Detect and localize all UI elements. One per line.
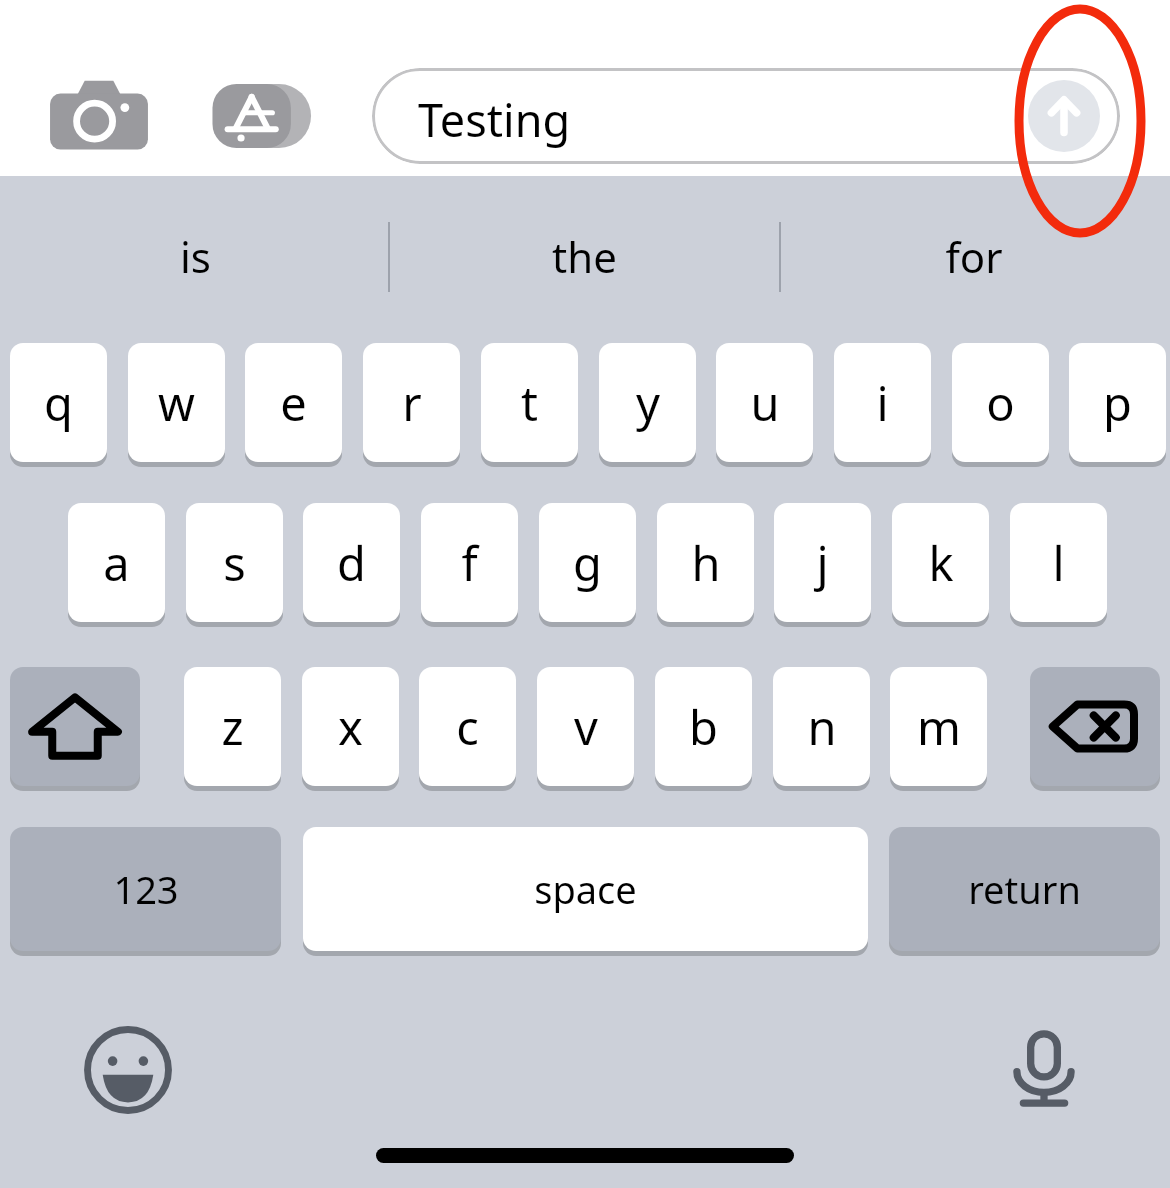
- staticText: f: [461, 531, 478, 595]
- staticText: s: [223, 531, 246, 595]
- button[interactable]: w: [128, 343, 225, 462]
- staticText: v: [574, 695, 598, 759]
- staticText: is: [180, 228, 211, 285]
- staticText: c: [456, 695, 479, 759]
- button[interactable]: is: [65, 200, 325, 312]
- staticText: t: [521, 371, 538, 435]
- staticText: a: [103, 531, 130, 595]
- button[interactable]: x: [302, 667, 399, 786]
- button[interactable]: r: [363, 343, 460, 462]
- button[interactable]: h: [657, 503, 754, 622]
- staticText: h: [691, 531, 721, 595]
- button[interactable]: for: [844, 200, 1104, 312]
- staticText: e: [280, 371, 307, 435]
- button[interactable]: Send: [1028, 80, 1100, 152]
- button[interactable]: return: [889, 827, 1160, 951]
- button[interactable]: d: [303, 503, 400, 622]
- staticText: u: [750, 371, 780, 435]
- button[interactable]: App Store: [208, 76, 320, 156]
- button[interactable]: n: [773, 667, 870, 786]
- staticText: i: [876, 371, 889, 435]
- button[interactable]: t: [481, 343, 578, 462]
- staticText: q: [44, 371, 73, 435]
- button[interactable]: i: [834, 343, 931, 462]
- staticText: w: [158, 371, 195, 435]
- staticText: o: [986, 371, 1015, 435]
- button[interactable]: f: [421, 503, 518, 622]
- staticText: r: [402, 371, 422, 435]
- button[interactable]: Testing: [372, 68, 1120, 164]
- button[interactable]: o: [952, 343, 1049, 462]
- button[interactable]: 123: [10, 827, 281, 951]
- button[interactable]: l: [1010, 503, 1107, 622]
- staticText: for: [945, 228, 1003, 285]
- button[interactable]: y: [599, 343, 696, 462]
- staticText: return: [968, 863, 1081, 915]
- button[interactable]: z: [184, 667, 281, 786]
- staticText: p: [1103, 371, 1132, 435]
- button[interactable]: p: [1069, 343, 1166, 462]
- staticText: m: [917, 695, 961, 759]
- button[interactable]: Shift: [10, 667, 140, 786]
- button[interactable]: m: [890, 667, 987, 786]
- staticText: the: [552, 228, 617, 285]
- button[interactable]: g: [539, 503, 636, 622]
- staticText: 123: [113, 863, 179, 915]
- staticText: x: [338, 695, 363, 759]
- staticText: n: [807, 695, 837, 759]
- button[interactable]: Delete: [1030, 667, 1160, 786]
- staticText: j: [816, 531, 829, 595]
- button[interactable]: a: [68, 503, 165, 622]
- button[interactable]: v: [537, 667, 634, 786]
- button[interactable]: q: [10, 343, 107, 462]
- staticText: k: [928, 531, 954, 595]
- staticText: l: [1052, 531, 1065, 595]
- button[interactable]: space: [303, 827, 868, 951]
- staticText: d: [337, 531, 366, 595]
- button[interactable]: u: [716, 343, 813, 462]
- button[interactable]: the: [454, 200, 714, 312]
- button[interactable]: k: [892, 503, 989, 622]
- button[interactable]: j: [774, 503, 871, 622]
- button[interactable]: s: [186, 503, 283, 622]
- button[interactable]: e: [245, 343, 342, 462]
- staticText: z: [221, 695, 244, 759]
- button[interactable]: Emoji keyboard: [76, 1018, 180, 1122]
- staticText: y: [636, 371, 660, 435]
- button[interactable]: Dictation: [992, 1018, 1096, 1122]
- staticText: g: [573, 531, 602, 595]
- staticText: b: [689, 695, 718, 759]
- staticText: Testing: [418, 89, 571, 150]
- button[interactable]: c: [419, 667, 516, 786]
- button[interactable]: b: [655, 667, 752, 786]
- staticText: space: [534, 863, 637, 915]
- button[interactable]: Camera: [44, 76, 154, 156]
